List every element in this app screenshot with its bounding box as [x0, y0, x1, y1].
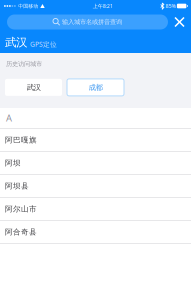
staticText: 中国移动	[18, 3, 38, 9]
staticText: 阿坝县	[5, 181, 29, 191]
staticText: 阿合奇县	[5, 227, 37, 237]
staticText: 成都	[88, 83, 102, 92]
button[interactable]: 输入城市名或拼音查询	[7, 14, 168, 29]
staticText: 历史访问城市	[6, 60, 42, 68]
button[interactable]: 阿坝	[0, 152, 191, 175]
button[interactable]: 阿巴嘎旗	[0, 129, 191, 152]
staticText: 上午8:21	[93, 2, 113, 10]
staticText: 阿尔山市	[5, 204, 37, 214]
button[interactable]: 阿合奇县	[0, 221, 191, 244]
staticText: 85%	[165, 2, 175, 10]
staticText: 武汉	[5, 35, 27, 50]
button[interactable]: 阿尔山市	[0, 198, 191, 221]
staticText: GPS定位	[30, 39, 57, 49]
staticText: 武汉	[26, 83, 40, 92]
button[interactable]: 关闭	[168, 14, 191, 29]
button[interactable]: 阿坝县	[0, 175, 191, 198]
button[interactable]: 武汉	[5, 79, 62, 96]
staticText: 阿巴嘎旗	[5, 135, 37, 145]
staticText: 输入城市名或拼音查询	[62, 18, 122, 26]
staticText: 阿坝	[5, 158, 21, 168]
button[interactable]: 成都	[67, 79, 124, 96]
staticText: A	[6, 112, 12, 124]
